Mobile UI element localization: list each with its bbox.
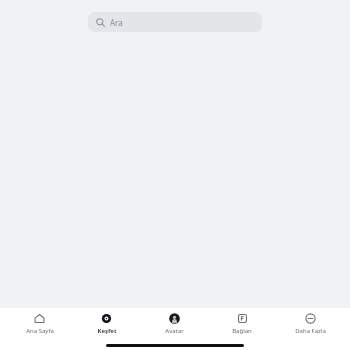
button[interactable]: Keşfet [73,308,140,340]
staticText: Daha Fazla [295,327,326,335]
staticText: Bağlan [232,327,252,335]
button[interactable]: Bağlan [208,308,276,340]
staticText: Avatar [165,327,184,335]
staticText: Ana Sayfa [26,327,54,335]
button[interactable]: Daha Fazla [276,308,344,340]
staticText: Keşfet [97,327,117,335]
button[interactable]: Avatar [140,308,208,340]
button[interactable]: Ana Sayfa [6,308,73,340]
button[interactable]: Ara [88,12,262,32]
staticText: Ara [110,17,123,28]
